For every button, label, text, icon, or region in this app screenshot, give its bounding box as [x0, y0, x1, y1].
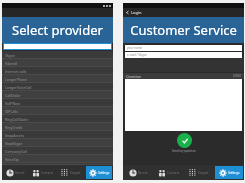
staticText: Skype	[5, 53, 15, 58]
staticText: Recent	[138, 171, 148, 175]
staticText: Login	[131, 10, 142, 15]
staticText: CallDialer	[5, 93, 21, 98]
button[interactable]: NowSkype	[2, 139, 113, 147]
button[interactable]: RingCredit	[2, 123, 113, 131]
button[interactable]: Internet calls	[2, 67, 113, 75]
button[interactable]: Keypad	[185, 166, 213, 179]
staticText: Settings	[228, 171, 240, 175]
button[interactable]: CallDialer	[2, 91, 113, 99]
button[interactable]	[3, 43, 112, 50]
staticText: NowSkype	[5, 141, 23, 146]
staticText: Settings	[98, 171, 110, 175]
staticText: VoIPNow	[5, 101, 20, 106]
button[interactable]: LongerPhone	[2, 75, 113, 83]
button[interactable]: Back	[125, 10, 142, 15]
staticText: RingCredit	[5, 125, 23, 130]
staticText: Question	[126, 74, 141, 79]
staticText: Send my question	[172, 149, 196, 153]
staticText: Keypad	[198, 171, 209, 175]
staticText: VoiceSip	[5, 157, 19, 162]
staticText: Viberall	[5, 61, 18, 66]
button[interactable]: Settings	[215, 166, 243, 179]
staticText: RingCallDialer	[5, 117, 29, 122]
staticText: Select provider	[12, 21, 103, 39]
staticText: CallCheap	[5, 163, 22, 165]
staticText: LongerPhone	[5, 77, 28, 82]
staticText: 0/250	[233, 74, 241, 78]
staticText: Customer Service	[130, 21, 237, 39]
button[interactable]: LongerVoiceCall	[2, 83, 113, 91]
button[interactable]: your name	[125, 45, 242, 51]
staticText: e-mail / Skype	[127, 53, 147, 57]
button[interactable]: Send question	[177, 133, 192, 148]
button[interactable]: SIPCalls	[2, 107, 113, 115]
button[interactable]: Contacts	[30, 166, 56, 179]
staticText: Contacts	[41, 171, 54, 175]
staticText: SnapAccess	[5, 133, 25, 138]
staticText: your name	[127, 46, 143, 50]
staticText: Keypad	[70, 171, 81, 175]
staticText: CompanyCall	[5, 149, 27, 154]
button[interactable]: VoIPNow	[2, 99, 113, 107]
button[interactable]: Recent	[124, 166, 153, 179]
button[interactable]: Recent	[3, 166, 28, 179]
button[interactable]: e-mail / Skype	[125, 52, 242, 58]
button[interactable]: CallCheap	[2, 163, 113, 165]
button[interactable]: Contacts	[155, 166, 183, 179]
button[interactable]: Viberall	[2, 59, 113, 67]
staticText: Internet calls	[5, 69, 27, 74]
button[interactable]: Skype	[2, 51, 113, 59]
staticText: Contacts	[167, 171, 180, 175]
button[interactable]: Settings	[86, 166, 112, 179]
staticText: Recent	[15, 171, 25, 175]
button[interactable]: SnapAccess	[2, 131, 113, 139]
button[interactable]: Keypad	[58, 166, 84, 179]
button[interactable]: RingCallDialer	[2, 115, 113, 123]
staticText: SIPCalls	[5, 109, 18, 114]
button[interactable]: VoiceSip	[2, 155, 113, 163]
button[interactable]: CompanyCall	[2, 147, 113, 155]
staticText: LongerVoiceCall	[5, 85, 32, 90]
